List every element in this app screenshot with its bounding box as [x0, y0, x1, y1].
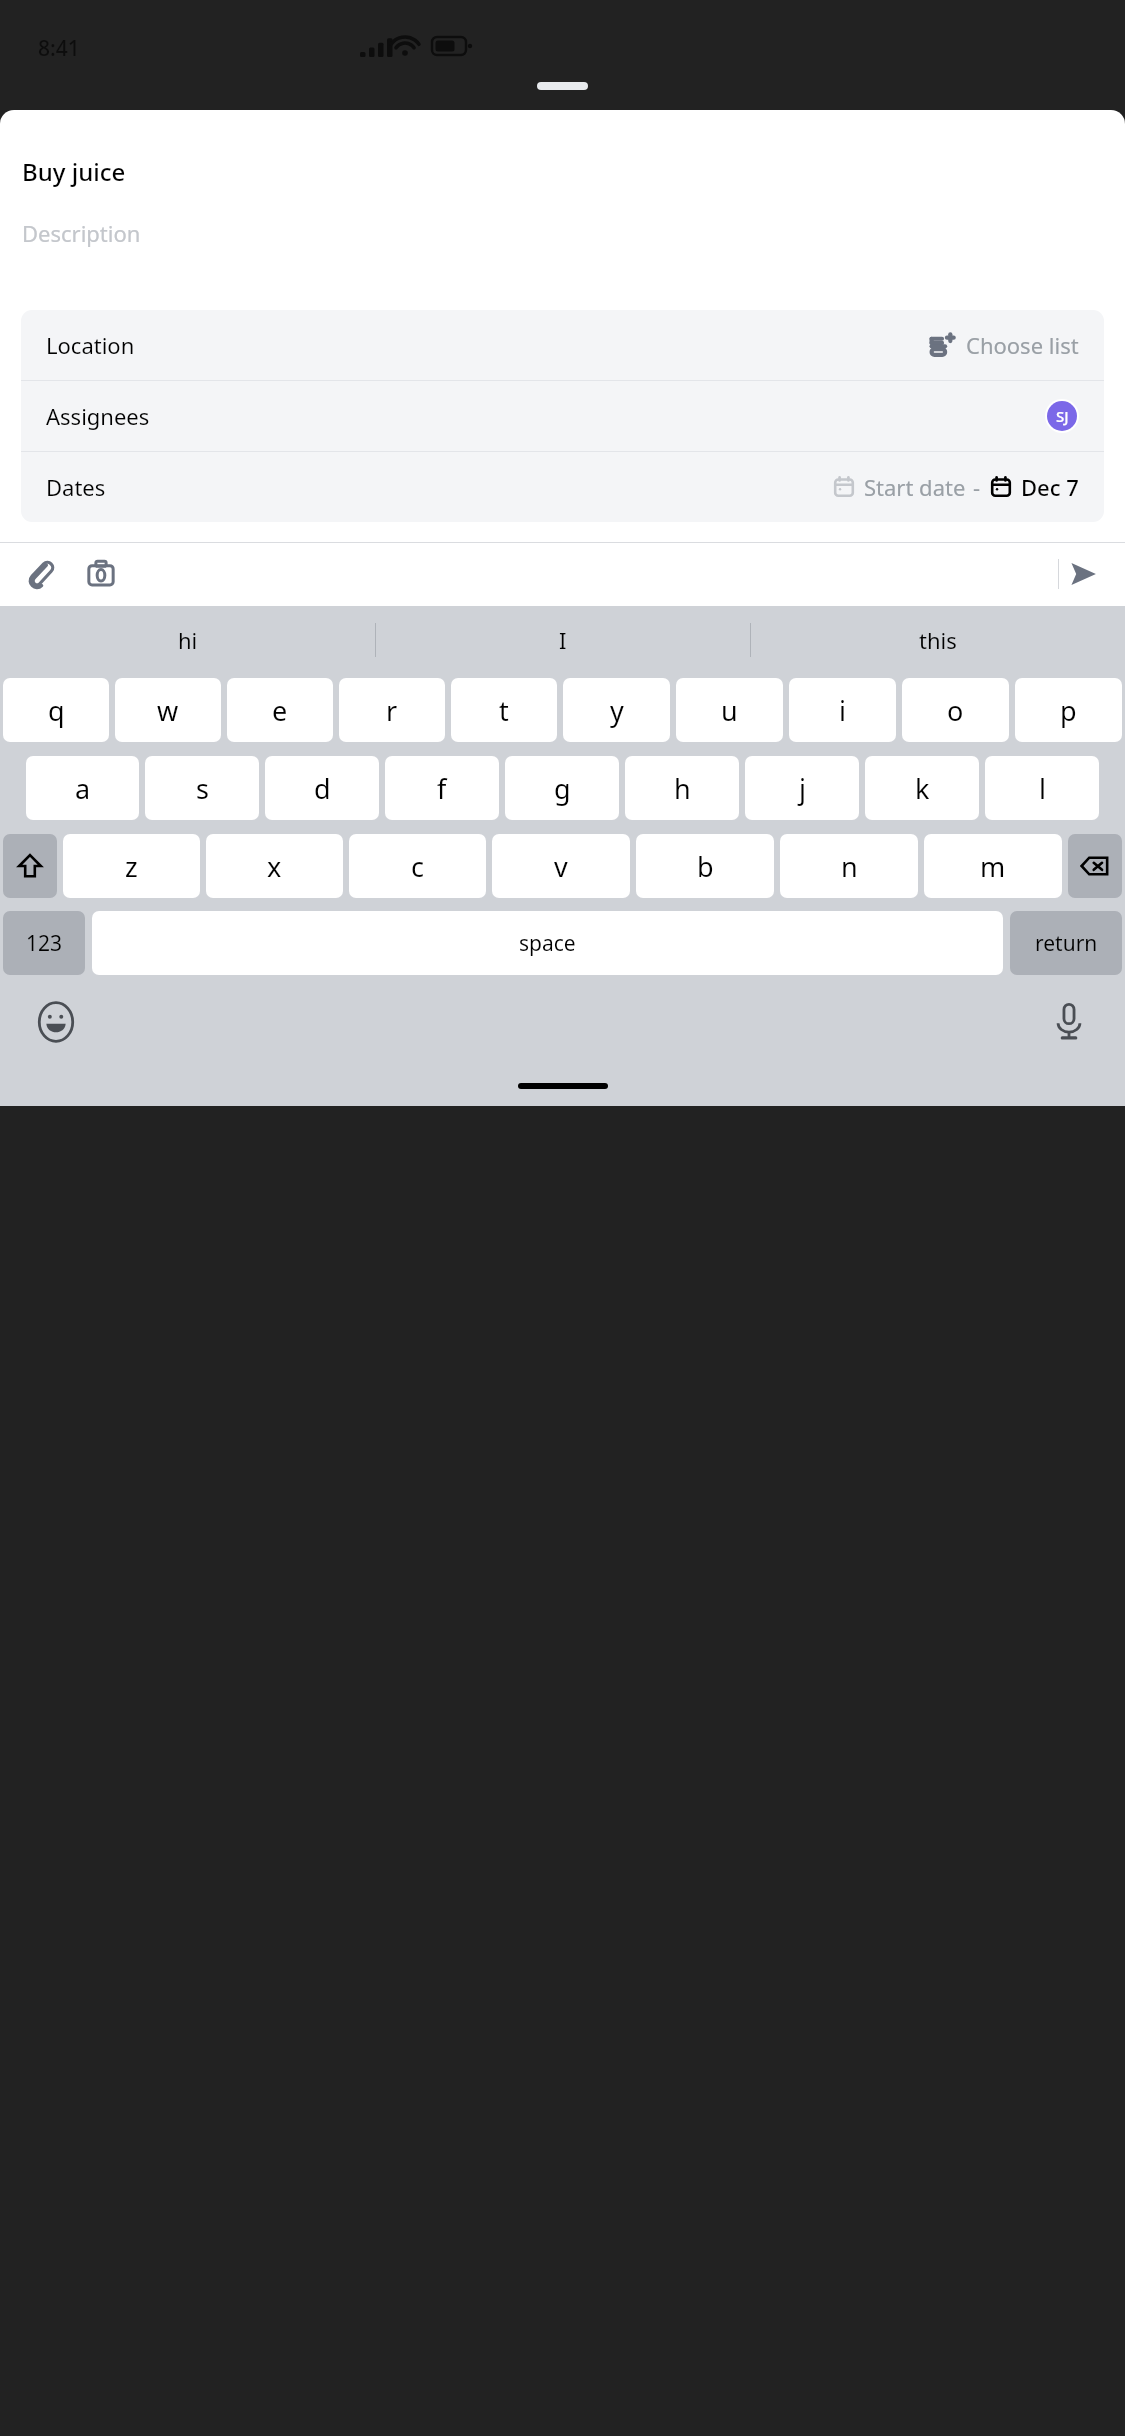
staticText: Description — [22, 218, 141, 248]
staticText: k — [915, 770, 930, 807]
button[interactable]: y — [563, 678, 670, 742]
button[interactable]: Assignees — [21, 381, 1104, 451]
staticText: d — [314, 770, 331, 807]
staticText: j — [799, 770, 806, 807]
staticText: Assignees — [46, 401, 150, 431]
button[interactable]: Dictation — [1043, 996, 1095, 1048]
button[interactable]: this — [751, 625, 1125, 655]
button[interactable]: o — [902, 678, 1009, 742]
staticText: z — [125, 848, 138, 885]
staticText: l — [1039, 770, 1046, 807]
button[interactable]: x — [206, 834, 343, 898]
staticText: 8:41 — [38, 34, 80, 63]
staticText: r — [386, 692, 398, 729]
staticText: e — [272, 692, 288, 729]
button[interactable]: m — [924, 834, 1062, 898]
button[interactable]: n — [780, 834, 918, 898]
button[interactable]: r — [339, 678, 445, 742]
staticText: I — [559, 625, 567, 655]
button[interactable]: hi — [0, 625, 375, 655]
button[interactable]: s — [145, 756, 259, 820]
staticText: w — [157, 692, 179, 729]
staticText: m — [980, 848, 1006, 885]
staticText: i — [839, 692, 846, 729]
button[interactable]: e — [227, 678, 333, 742]
staticText: hi — [178, 625, 198, 655]
button[interactable]: g — [505, 756, 619, 820]
staticText: o — [947, 692, 964, 729]
button[interactable]: Send — [1059, 550, 1107, 598]
button[interactable]: f — [385, 756, 499, 820]
button[interactable]: u — [676, 678, 783, 742]
button[interactable]: Take photo — [78, 551, 124, 597]
staticText: space — [519, 929, 576, 958]
staticText: n — [841, 848, 858, 885]
staticText: a — [75, 770, 91, 807]
button[interactable]: I — [376, 625, 750, 655]
staticText: b — [697, 848, 714, 885]
button[interactable]: return — [1010, 911, 1122, 975]
button[interactable]: v — [492, 834, 630, 898]
staticText: - — [973, 472, 981, 502]
button[interactable]: p — [1015, 678, 1122, 742]
staticText: u — [721, 692, 738, 729]
button[interactable]: j — [745, 756, 859, 820]
staticText: h — [674, 770, 691, 807]
staticText: SJ — [1056, 406, 1069, 426]
staticText: v — [554, 848, 568, 885]
button[interactable]: Backspace — [1068, 834, 1122, 898]
button[interactable]: t — [451, 678, 557, 742]
button[interactable]: a — [26, 756, 139, 820]
staticText: return — [1035, 929, 1098, 958]
button[interactable]: i — [789, 678, 896, 742]
staticText: x — [267, 848, 282, 885]
button[interactable]: Dates — [21, 452, 1104, 522]
button[interactable]: q — [3, 678, 109, 742]
button[interactable]: l — [985, 756, 1099, 820]
button[interactable]: k — [865, 756, 979, 820]
button[interactable]: Attach file — [18, 551, 64, 597]
staticText: Dec 7 — [1021, 472, 1079, 502]
button[interactable]: 123 — [3, 911, 85, 975]
staticText: Buy juice — [22, 155, 126, 188]
staticText: Dates — [46, 472, 106, 502]
staticText: s — [196, 770, 209, 807]
button[interactable]: z — [63, 834, 200, 898]
staticText: Start date — [864, 472, 966, 502]
button[interactable]: d — [265, 756, 379, 820]
staticText: f — [437, 770, 447, 807]
staticText: y — [610, 692, 624, 729]
staticText: Choose list — [966, 330, 1079, 360]
staticText: t — [499, 692, 509, 729]
button[interactable]: w — [115, 678, 221, 742]
staticText: this — [919, 625, 957, 655]
button[interactable]: Emoji — [30, 996, 82, 1048]
staticText: Location — [46, 330, 135, 360]
staticText: p — [1060, 692, 1077, 729]
button[interactable]: c — [349, 834, 486, 898]
staticText: q — [48, 692, 65, 729]
button[interactable]: h — [625, 756, 739, 820]
staticText: c — [411, 848, 424, 885]
button[interactable]: Location — [21, 310, 1104, 380]
button[interactable]: space — [92, 911, 1003, 975]
button[interactable]: Shift — [3, 834, 57, 898]
button[interactable]: b — [636, 834, 774, 898]
staticText: 123 — [26, 929, 63, 958]
staticText: g — [554, 770, 571, 807]
